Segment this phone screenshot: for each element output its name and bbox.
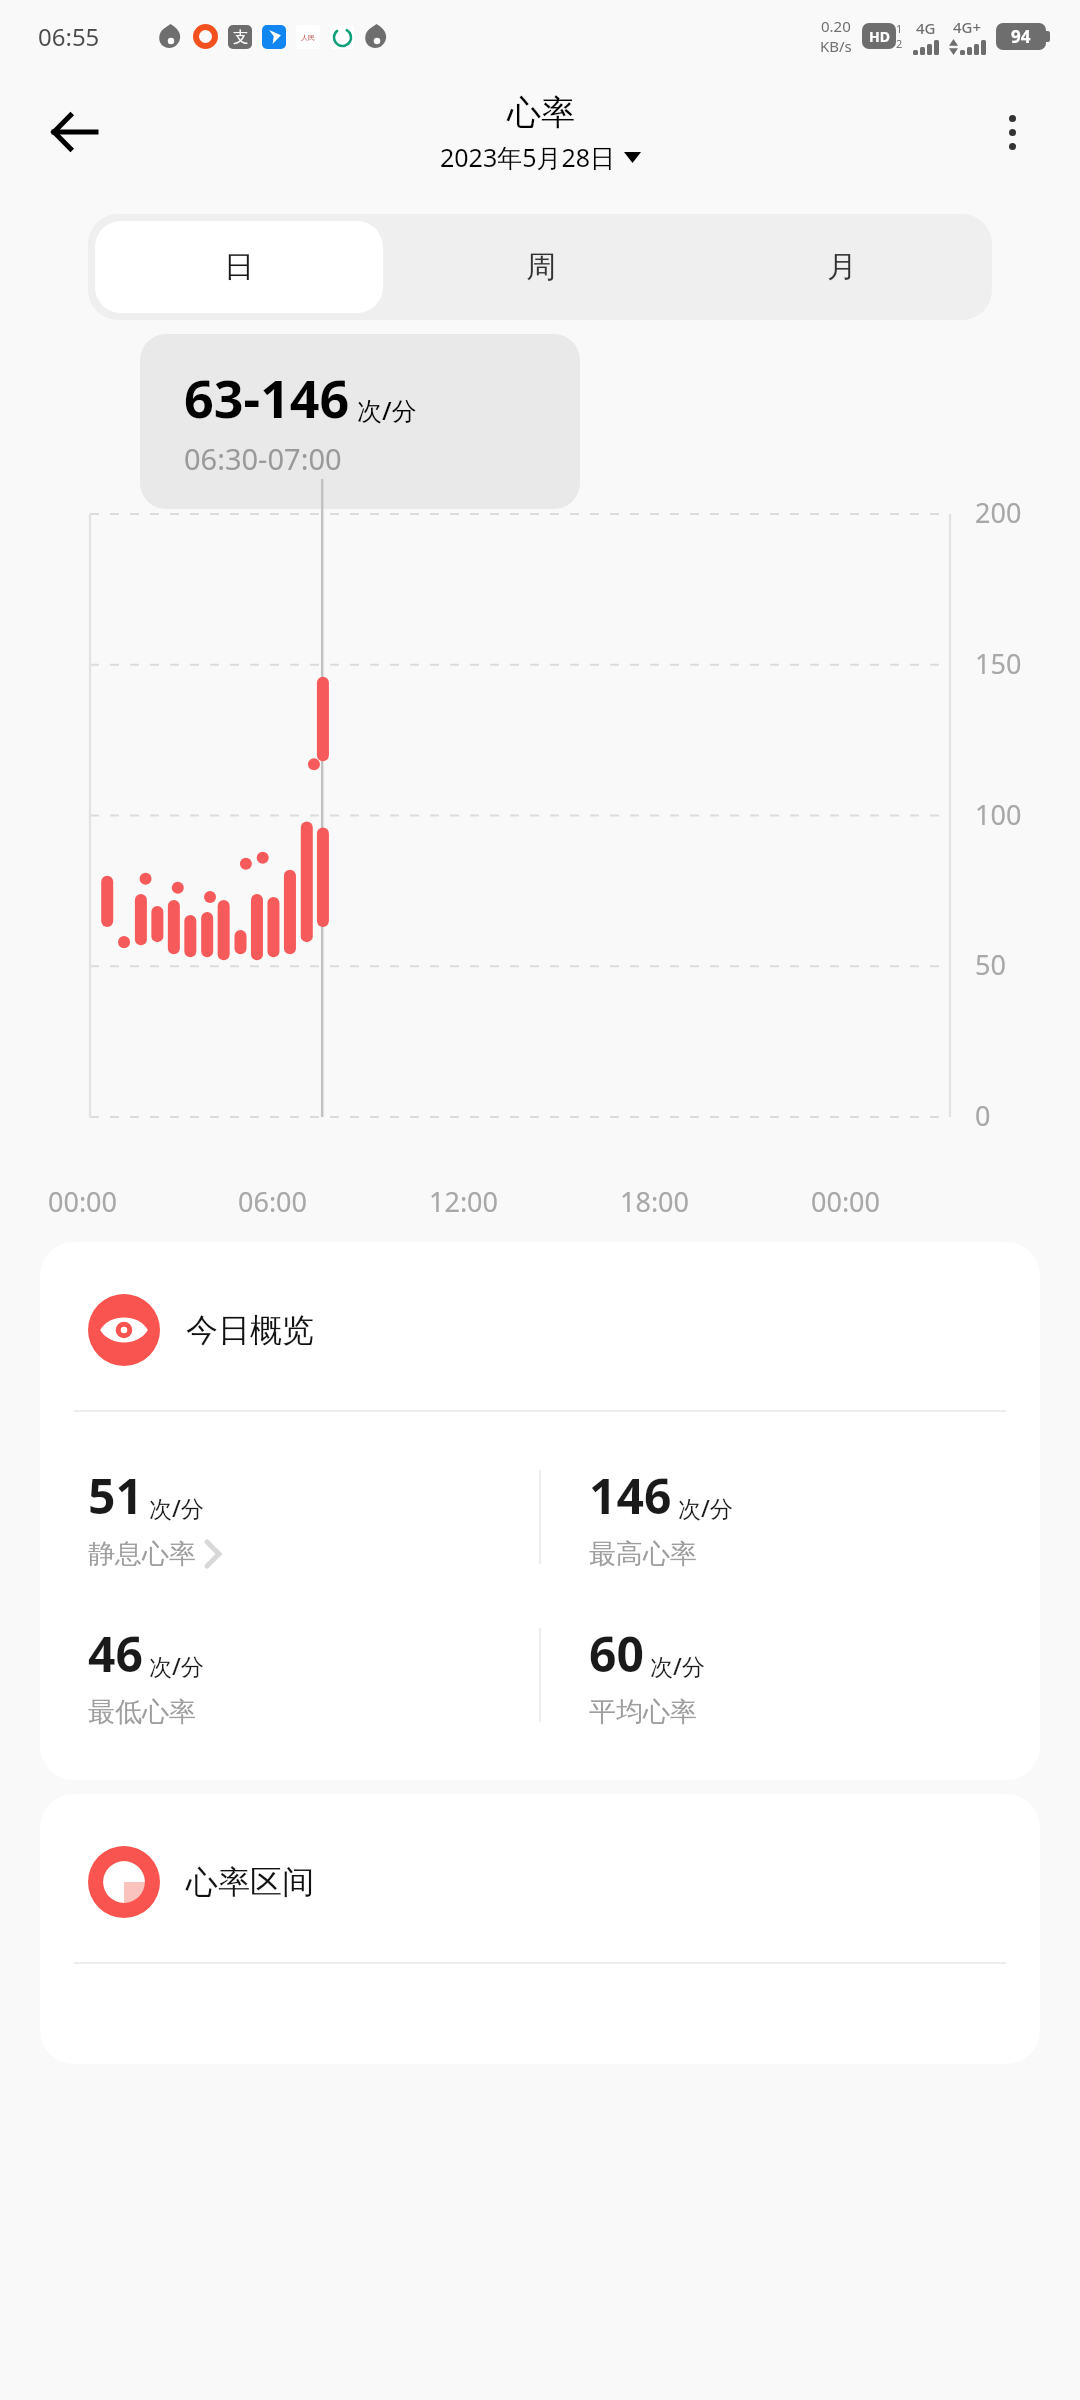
staticText: 46 bbox=[88, 1621, 143, 1686]
staticText: 06:55 bbox=[38, 20, 100, 53]
staticText: 次/分 bbox=[678, 1492, 733, 1523]
staticText: 150 bbox=[975, 645, 1022, 682]
staticText: 146 bbox=[589, 1463, 672, 1528]
staticText: 06:00 bbox=[238, 1183, 308, 1220]
staticText: 50 bbox=[975, 946, 1006, 983]
button[interactable]: 心率区间 bbox=[40, 1794, 1040, 2064]
button[interactable]: 60 bbox=[589, 1610, 1040, 1740]
button[interactable]: 周 bbox=[397, 221, 684, 313]
button[interactable]: 63-146 bbox=[140, 334, 580, 509]
staticText: 100 bbox=[975, 796, 1022, 833]
staticText: 人民 bbox=[301, 33, 315, 42]
staticText: 最高心率 bbox=[589, 1537, 697, 1571]
staticText: 18:00 bbox=[620, 1183, 690, 1220]
staticText: 次/分 bbox=[149, 1492, 204, 1523]
staticText: 2 bbox=[896, 36, 903, 51]
staticText: 200 bbox=[975, 494, 1022, 531]
staticText: 06:30-07:00 bbox=[184, 439, 342, 478]
staticText: 0 bbox=[975, 1097, 991, 1134]
staticText: 日 bbox=[224, 248, 254, 286]
staticText: 今日概览 bbox=[186, 1310, 314, 1350]
staticText: 94 bbox=[1011, 25, 1031, 48]
button[interactable]: 51 bbox=[88, 1452, 539, 1582]
staticText: HD bbox=[869, 27, 890, 46]
button[interactable]: Back bbox=[42, 100, 106, 164]
staticText: 1 bbox=[896, 21, 903, 36]
button[interactable]: 2023年5月28日 bbox=[440, 140, 641, 174]
staticText: 次/分 bbox=[650, 1650, 705, 1681]
staticText: 60 bbox=[589, 1621, 644, 1686]
staticText: 周 bbox=[526, 248, 556, 286]
staticText: 平均心率 bbox=[589, 1695, 697, 1729]
staticText: 0.20 bbox=[821, 16, 851, 36]
staticText: 心率 bbox=[507, 91, 575, 134]
button[interactable]: More options bbox=[984, 104, 1040, 160]
staticText: 次/分 bbox=[149, 1650, 204, 1681]
staticText: 12:00 bbox=[429, 1183, 499, 1220]
button[interactable]: 146 bbox=[589, 1452, 1040, 1582]
staticText: 4G+ bbox=[953, 17, 982, 37]
staticText: 心率区间 bbox=[186, 1862, 314, 1902]
button[interactable]: 今日概览 bbox=[40, 1242, 1040, 1780]
staticText: 51 bbox=[88, 1463, 143, 1528]
staticText: 4G bbox=[916, 18, 936, 38]
staticText: 最低心率 bbox=[88, 1695, 196, 1729]
staticText: 2023年5月28日 bbox=[440, 140, 616, 174]
button[interactable]: 月 bbox=[698, 221, 985, 313]
staticText: 月 bbox=[827, 248, 857, 286]
staticText: 支 bbox=[233, 28, 248, 47]
staticText: 00:00 bbox=[811, 1183, 881, 1220]
staticText: KB/s bbox=[820, 36, 852, 56]
staticText: 63-146 bbox=[184, 362, 350, 433]
button[interactable]: 日 bbox=[95, 221, 383, 313]
button[interactable]: 46 bbox=[88, 1610, 539, 1740]
staticText: 静息心率 bbox=[88, 1537, 196, 1571]
staticText: 次/分 bbox=[357, 393, 417, 427]
staticText: 00:00 bbox=[48, 1183, 118, 1220]
